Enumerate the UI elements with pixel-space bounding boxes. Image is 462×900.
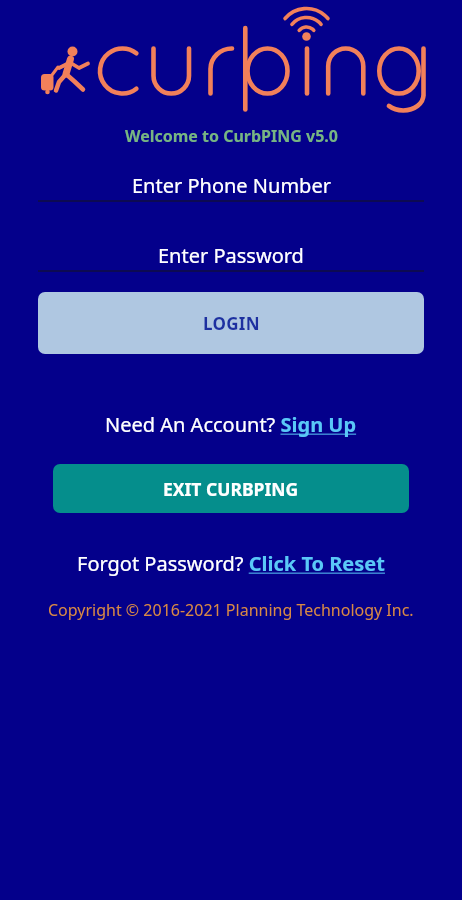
staticText: Welcome to CurbPING v5.0 — [125, 125, 338, 147]
button[interactable]: Forgot Password? Click To Reset — [0, 549, 462, 577]
button[interactable]: Need An Account? Sign Up — [0, 410, 462, 438]
staticText: Forgot Password? Click To Reset — [77, 550, 385, 577]
staticText: EXIT CURBPING — [163, 477, 299, 501]
button[interactable]: EXIT CURBPING — [53, 464, 409, 513]
staticText: Enter Phone Number — [132, 172, 331, 198]
staticText: Need An Account? Sign Up — [105, 411, 357, 438]
staticText: LOGIN — [203, 312, 260, 335]
staticText: Copyright © 2016-2021 Planning Technolog… — [48, 599, 414, 621]
button[interactable]: LOGIN — [38, 292, 424, 354]
staticText: Enter Password — [158, 242, 304, 268]
